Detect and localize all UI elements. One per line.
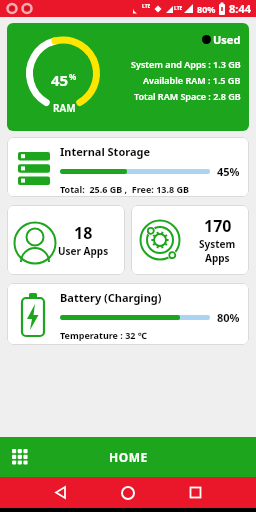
- staticText: Used: [213, 32, 241, 47]
- staticText: System: [199, 237, 236, 251]
- staticText: RAM: [53, 101, 76, 115]
- staticText: Battery (Charging): [60, 290, 162, 305]
- staticText: LTE: [174, 5, 183, 12]
- staticText: %: [69, 71, 77, 82]
- staticText: Available RAM : 1.5 GB: [143, 74, 241, 86]
- staticText: System and Apps : 1.3 GB: [131, 58, 241, 70]
- staticText: 45: [51, 70, 69, 90]
- staticText: 8:44: [229, 1, 251, 16]
- staticText: Apps: [205, 251, 230, 265]
- staticText: HOME: [109, 449, 148, 465]
- staticText: 80%: [197, 3, 216, 15]
- staticText: Total RAM Space : 2.8 GB: [134, 90, 241, 102]
- staticText: User Apps: [58, 244, 109, 258]
- staticText: LTE: [142, 3, 151, 10]
- staticText: 45%: [217, 164, 240, 179]
- staticText: Internal Storage: [60, 144, 151, 159]
- staticText: Temperature : 32 ℃: [60, 329, 147, 341]
- staticText: 18: [74, 222, 93, 244]
- staticText: Total: 25.6 GB , Free: 13.8 GB: [60, 183, 189, 195]
- staticText: 80%: [217, 310, 240, 325]
- staticText: 170: [204, 215, 232, 237]
